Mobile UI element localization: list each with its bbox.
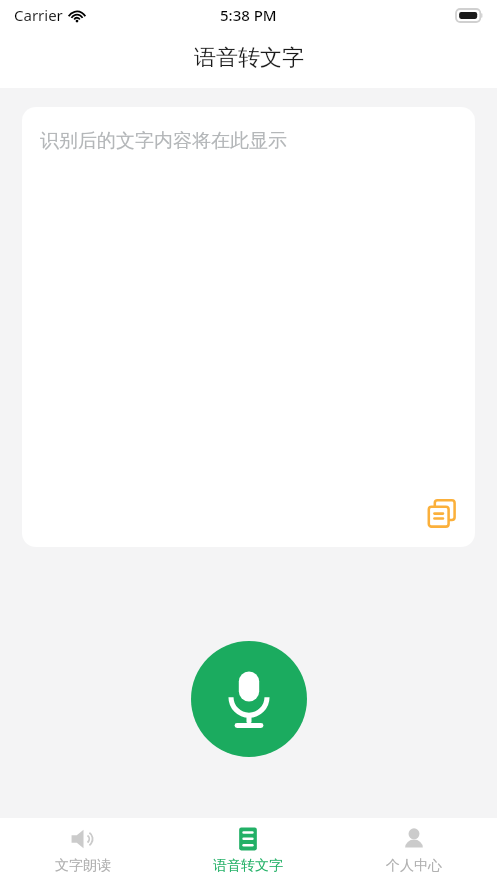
button[interactable]: 文字朗读 [0,818,165,883]
staticText: 语音转文字 [194,44,304,72]
staticText: 个人中心 [386,857,442,875]
button[interactable]: 识别后的文字内容将在此显示 [22,107,475,547]
staticText: 5:38 PM [220,5,277,25]
button[interactable]: 复制 [423,495,461,533]
button[interactable]: 个人中心 [331,818,497,883]
staticText: 语音转文字 [213,857,283,875]
staticText: 文字朗读 [55,857,111,875]
staticText: 识别后的文字内容将在此显示 [40,129,287,153]
button[interactable]: 语音转文字 [165,818,331,883]
staticText: Carrier [14,5,63,25]
button[interactable]: 录音 [191,641,307,757]
